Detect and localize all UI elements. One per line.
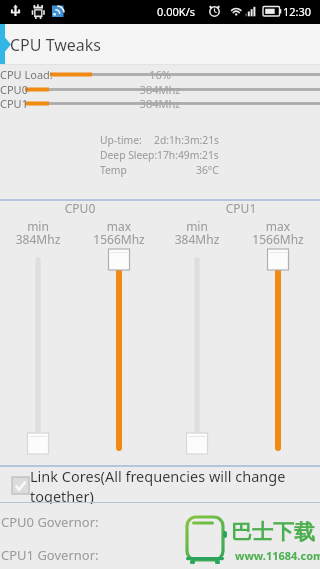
staticText: Temp: [100, 163, 127, 177]
staticText: 0.00K/s: [157, 4, 195, 19]
button[interactable]: CPU0 Governor:: [0, 508, 320, 536]
button[interactable]: Min frequency: [23, 248, 53, 456]
staticText: together): [30, 486, 94, 504]
button[interactable]: Max frequency: [263, 248, 293, 456]
staticText: CPU1: [0, 96, 28, 111]
staticText: 1566Mhz: [233, 231, 320, 247]
button[interactable]: CPU Tweaks: [10, 24, 320, 65]
staticText: min: [152, 218, 242, 234]
staticText: Link Cores(All frequencies will change: [30, 466, 286, 486]
staticText: CPU0: [60, 200, 100, 216]
staticText: 2d:1h:3m:21s: [154, 133, 219, 147]
staticText: CPU Load:: [0, 67, 53, 82]
staticText: 1566Mhz: [74, 231, 164, 247]
staticText: 384Mhz: [0, 96, 320, 111]
staticText: Deep Sleep:: [100, 148, 158, 162]
staticText: 12:30: [283, 4, 312, 19]
staticText: 巴士下载: [231, 519, 315, 545]
button[interactable]: Max frequency: [104, 248, 134, 456]
staticText: 384Mhz: [152, 231, 242, 247]
staticText: CPU1: [221, 200, 261, 216]
staticText: 384Mhz: [0, 82, 320, 97]
staticText: CPU0: [0, 82, 28, 97]
staticText: CPU Tweaks: [10, 34, 102, 56]
staticText: 17h:49m:21s: [157, 148, 219, 162]
staticText: www.11684.com: [235, 548, 320, 563]
staticText: 16%: [0, 67, 320, 82]
staticText: CPU1 Governor:: [1, 546, 99, 564]
staticText: min: [0, 218, 83, 234]
button[interactable]: Link Cores(All frequencies will change: [0, 466, 320, 504]
button[interactable]: CPU1 Governor:: [0, 541, 320, 569]
button[interactable]: Min frequency: [182, 248, 212, 456]
staticText: 36°C: [196, 163, 219, 177]
staticText: Up-time:: [100, 133, 142, 147]
staticText: CPU0 Governor:: [1, 513, 99, 531]
staticText: max: [233, 218, 320, 234]
staticText: max: [74, 218, 164, 234]
staticText: 384Mhz: [0, 231, 83, 247]
